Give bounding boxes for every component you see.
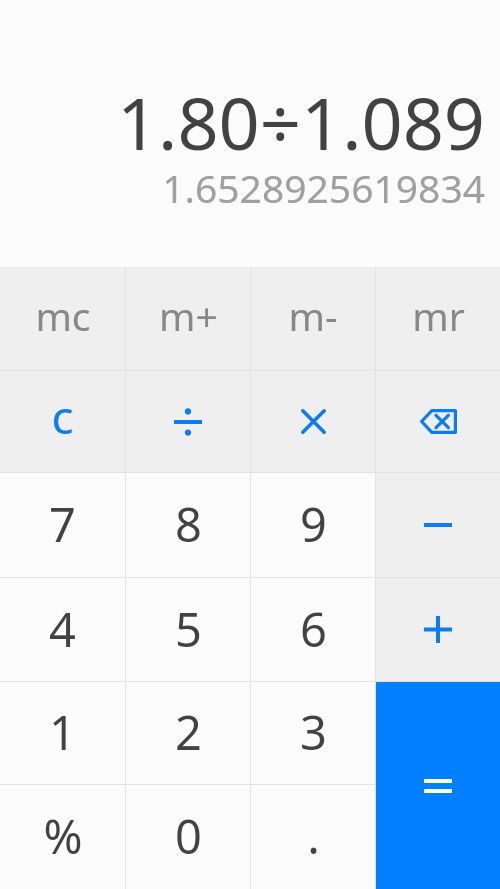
staticText: m+ (159, 289, 218, 342)
button[interactable]: . (251, 785, 375, 889)
button[interactable]: 5 (126, 578, 250, 681)
staticText: 6 (300, 597, 327, 661)
staticText: 1 (49, 700, 76, 764)
button[interactable]: Minus (376, 473, 500, 577)
staticText: 2 (175, 700, 202, 764)
button[interactable]: Multiply (251, 371, 375, 472)
button[interactable]: 6 (251, 578, 375, 681)
button[interactable]: 4 (0, 578, 125, 681)
staticText: % (43, 804, 83, 868)
staticText: mc (35, 289, 91, 342)
button[interactable]: 2 (126, 682, 250, 784)
button[interactable]: mc (0, 267, 125, 370)
button[interactable]: 3 (251, 682, 375, 784)
button[interactable]: Backspace (376, 371, 500, 472)
button[interactable]: mr (376, 267, 500, 370)
button[interactable]: Clear (0, 371, 125, 472)
button[interactable]: 1 (0, 682, 125, 784)
staticText: mr (412, 289, 465, 342)
staticText: 8 (175, 492, 202, 556)
button[interactable]: 9 (251, 473, 375, 577)
staticText: 9 (300, 492, 327, 556)
staticText: 5 (175, 597, 202, 661)
button[interactable]: 0 (126, 785, 250, 889)
staticText: 7 (49, 492, 76, 556)
button[interactable]: m- (251, 267, 375, 370)
button[interactable]: Plus (376, 578, 500, 681)
button[interactable]: Equals (376, 682, 500, 889)
button[interactable]: 8 (126, 473, 250, 577)
button[interactable]: m+ (126, 267, 250, 370)
button[interactable]: 7 (0, 473, 125, 577)
staticText: 3 (300, 700, 327, 764)
staticText: 1.80÷1.089 (116, 73, 485, 171)
staticText: c (51, 385, 74, 448)
staticText: 1.6528925619834 (162, 161, 485, 214)
staticText: 0 (175, 804, 202, 868)
staticText: . (307, 804, 320, 868)
staticText: m- (288, 289, 338, 342)
button[interactable]: % (0, 785, 125, 889)
button[interactable]: Divide (126, 371, 250, 472)
staticText: 4 (49, 597, 76, 661)
